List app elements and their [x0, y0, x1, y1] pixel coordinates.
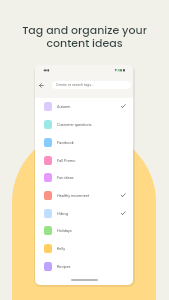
button[interactable]: Healthy movement [35, 186, 133, 204]
staticText: Customer questions [57, 122, 92, 127]
button[interactable]: Fun ideas [35, 168, 133, 186]
button[interactable]: Fall Promo [35, 151, 133, 169]
staticText: Holidays [57, 228, 72, 233]
button[interactable]: Back [36, 80, 46, 90]
button[interactable]: Customer questions [35, 115, 133, 133]
button[interactable]: Facebook [35, 133, 133, 151]
button[interactable]: Kelly [35, 239, 133, 257]
staticText: Tag and organize your content ideas [0, 22, 169, 51]
staticText: Create or search tags... [56, 83, 94, 87]
staticText: Facebook [57, 140, 74, 145]
staticText: Healthy movement [57, 193, 90, 198]
staticText: Fall Promo [57, 158, 76, 163]
button[interactable]: Autumn [35, 97, 133, 115]
staticText: Autumn [57, 104, 71, 109]
staticText: Recipes [57, 264, 71, 269]
staticText: Kelly [57, 246, 66, 251]
staticText: Fun ideas [57, 175, 74, 180]
button[interactable]: Recipes [35, 257, 133, 275]
button[interactable]: Hiking [35, 204, 133, 222]
button[interactable]: Create or search tags... [52, 81, 131, 89]
staticText: Hiking [57, 211, 68, 216]
button[interactable]: Holidays [35, 221, 133, 239]
